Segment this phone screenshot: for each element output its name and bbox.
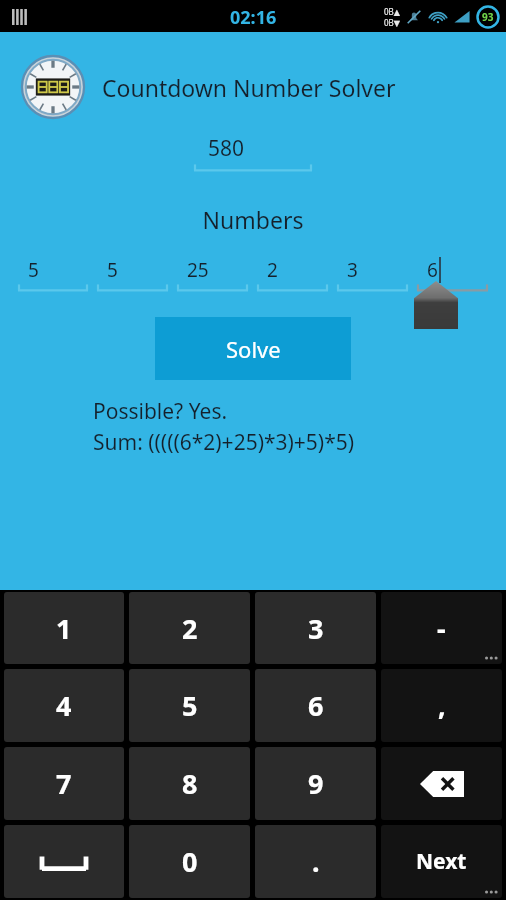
staticText: 580 xyxy=(208,134,245,163)
button[interactable]: 6 xyxy=(255,669,376,742)
staticText: 93 xyxy=(482,10,494,24)
staticText: , xyxy=(438,687,446,724)
button[interactable]: 2 xyxy=(129,592,250,664)
staticText: 5 xyxy=(28,257,39,283)
staticText: 8 xyxy=(182,765,198,802)
button[interactable]: , xyxy=(381,669,502,742)
staticText: 0B▼ xyxy=(384,17,400,28)
staticText: 1 xyxy=(56,610,72,647)
button[interactable]: 2 xyxy=(257,257,328,294)
staticText: 0B▲ xyxy=(384,6,400,17)
button[interactable]: 25 xyxy=(177,257,248,294)
staticText: 0 xyxy=(182,843,198,880)
staticText: 9 xyxy=(308,765,324,802)
button[interactable]: 3 xyxy=(255,592,376,664)
button[interactable]: 5 xyxy=(97,257,168,294)
other: Text selection handle xyxy=(414,281,458,329)
button[interactable]: 5 xyxy=(18,257,88,294)
button[interactable]: - xyxy=(381,592,502,664)
staticText: Next xyxy=(416,847,467,876)
staticText: 6 xyxy=(427,257,438,283)
staticText: 4 xyxy=(56,687,72,724)
staticText: Solve xyxy=(226,334,281,364)
staticText: 5 xyxy=(107,257,118,283)
button[interactable]: 580 xyxy=(194,134,312,174)
staticText: Countdown Number Solver xyxy=(102,72,396,103)
staticText: 25 xyxy=(187,257,209,283)
staticText: 5 xyxy=(182,687,198,724)
staticText: 3 xyxy=(308,610,324,647)
staticText: Sum: (((((6*2)+25)*3)+5)*5) xyxy=(93,428,355,457)
button[interactable]: 7 xyxy=(4,747,124,820)
button[interactable]: 9 xyxy=(255,747,376,820)
staticText: Numbers xyxy=(0,204,506,235)
button[interactable]: 0 xyxy=(129,825,250,898)
button[interactable]: . xyxy=(255,825,376,898)
staticText: 6 xyxy=(308,687,324,724)
button[interactable]: 4 xyxy=(4,669,124,742)
button[interactable]: 8 xyxy=(129,747,250,820)
staticText: . xyxy=(312,843,320,880)
staticText: Possible? Yes. xyxy=(93,397,228,426)
button[interactable]: Backspace xyxy=(381,747,502,820)
staticText: 7 xyxy=(56,765,72,802)
staticText: - xyxy=(437,610,446,647)
staticText: 2 xyxy=(182,610,198,647)
button[interactable]: Space xyxy=(4,825,124,898)
button[interactable]: Next xyxy=(381,825,502,898)
button[interactable]: 5 xyxy=(129,669,250,742)
button[interactable]: 3 xyxy=(337,257,408,294)
staticText: 3 xyxy=(347,257,358,283)
staticText: 2 xyxy=(267,257,278,283)
button[interactable]: Solve xyxy=(155,317,351,380)
button[interactable]: 6 xyxy=(417,257,488,294)
staticText: 02:16 xyxy=(230,5,277,30)
button[interactable]: 1 xyxy=(4,592,124,664)
